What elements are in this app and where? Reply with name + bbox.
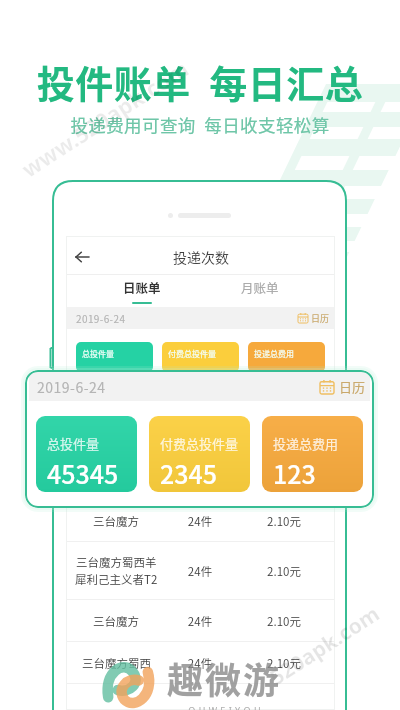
staticText: 趣微游 [167,652,282,704]
button[interactable]: 总投件量 [76,342,153,372]
staticText: 24件 [175,613,225,630]
button[interactable]: 三台魔方 [66,600,335,642]
staticText: 总投件量 [82,348,114,360]
staticText: 45345 [47,455,119,491]
staticText: 三台魔方蜀西羊 [76,554,157,571]
button[interactable]: 投递总费用 [248,342,325,372]
staticText: 2.10元 [249,655,319,672]
staticText: 三台魔方 [93,613,139,630]
staticText: 520apk.com [264,599,386,692]
staticText: 24件 [175,563,225,580]
staticText: 投递费用可查询 每日收支轻松算 [0,112,400,137]
staticText: 123 [273,455,316,491]
button[interactable]: 付费总投件量 [149,416,250,492]
staticText: 投件账单 每日汇总 [0,54,400,109]
staticText: 总投件量 [47,434,100,453]
staticText: 投递次数 [173,247,229,267]
button[interactable]: 三台魔方 [66,500,335,542]
staticText: 2019-6-24 [37,377,106,397]
button[interactable]: 三台魔方蜀西 [66,642,335,684]
staticText: 2.10元 [249,613,319,630]
staticText: 日账单 [123,278,161,296]
staticText: 三台魔方蜀西 [82,655,151,672]
button[interactable]: 2019-6-24 [37,372,366,401]
staticText: 投递总费用 [273,434,339,453]
staticText: 付费总投件量 [168,348,216,360]
staticText: www.520apk.com [15,53,194,183]
staticText: 月账单 [241,278,279,296]
staticText: 24件 [175,513,225,530]
button[interactable]: 付费总投件量 [162,342,239,372]
staticText: 投递总费用 [254,348,294,360]
button[interactable]: 投递总费用 [262,416,363,492]
staticText: — Q U W E I Y O U — [176,704,274,710]
staticText: 2345 [160,455,218,491]
button[interactable]: 2019-6-24 [76,307,330,329]
staticText: 2.10元 [249,563,319,580]
staticText: 24件 [175,655,225,672]
staticText: 日历 [339,377,366,396]
button[interactable]: 月账单 [217,275,302,307]
staticText: 付费总投件量 [160,434,239,453]
staticText: 2019-6-24 [76,311,126,325]
button[interactable]: 日账单 [99,275,184,307]
button[interactable]: 三台魔方蜀西羊 [66,542,335,600]
button[interactable]: Back [71,246,93,268]
staticText: 三台魔方 [93,513,139,530]
staticText: 日历 [311,312,330,325]
button[interactable]: 总投件量 [36,416,137,492]
staticText: 犀利己主义者T2 [75,571,158,588]
staticText: 2.10元 [249,513,319,530]
